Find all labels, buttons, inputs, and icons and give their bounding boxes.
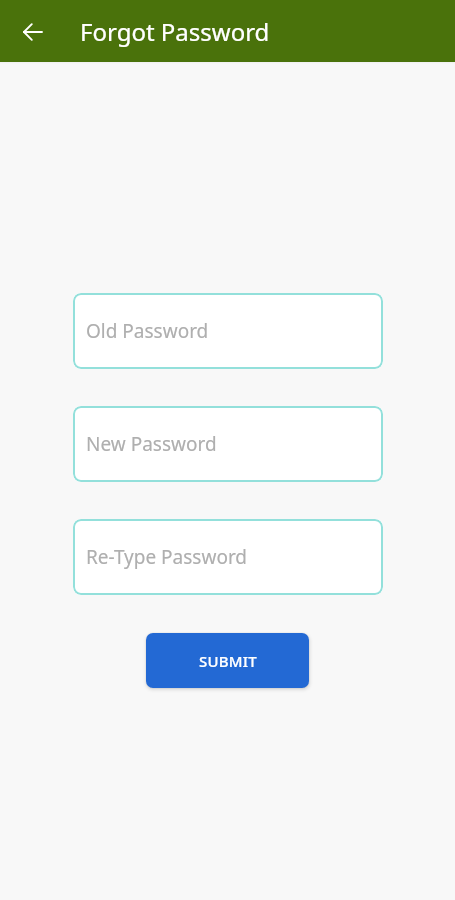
staticText: Old Password bbox=[86, 318, 209, 344]
staticText: Forgot Password bbox=[80, 15, 270, 48]
staticText: New Password bbox=[86, 431, 217, 457]
staticText: Re-Type Password bbox=[86, 544, 248, 570]
button[interactable]: Re-Type Password bbox=[73, 519, 383, 595]
staticText: SUBMIT bbox=[199, 651, 257, 671]
button[interactable]: Old Password bbox=[73, 293, 383, 369]
button[interactable]: Back bbox=[12, 11, 54, 53]
button[interactable]: SUBMIT bbox=[146, 633, 309, 688]
button[interactable]: New Password bbox=[73, 406, 383, 482]
